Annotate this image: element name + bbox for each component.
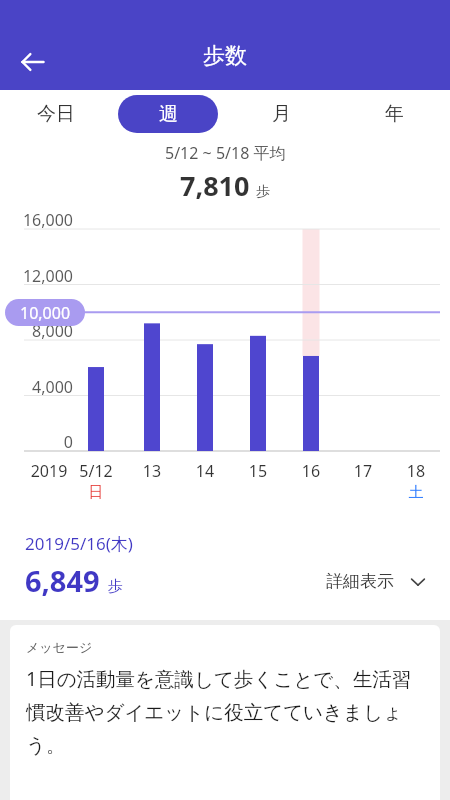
staticText: 歩 <box>256 183 270 201</box>
staticText: 4,000 <box>0 376 73 398</box>
staticText: 17 <box>338 460 388 482</box>
button[interactable]: Back <box>12 41 54 83</box>
button[interactable]: 今日 <box>6 95 106 133</box>
staticText: 2019 <box>24 460 74 482</box>
staticText: 5/12 ~ 5/18 平均 <box>165 142 286 164</box>
staticText: 7,810 <box>180 167 250 204</box>
staticText: 日 <box>71 483 121 502</box>
staticText: 13 <box>127 460 177 482</box>
staticText: 週 <box>159 102 178 126</box>
staticText: 詳細表示 <box>326 571 394 592</box>
staticText: 8,000 <box>0 320 73 342</box>
button[interactable]: 詳細表示 <box>316 563 436 600</box>
staticText: 2019/5/16(木) <box>25 532 133 555</box>
button[interactable]: 週 <box>118 95 218 133</box>
staticText: 16 <box>286 460 336 482</box>
staticText: 歩数 <box>203 42 247 70</box>
button[interactable]: メッセージ <box>10 625 440 800</box>
staticText: 12,000 <box>0 265 73 287</box>
button[interactable]: 月 <box>231 95 331 133</box>
staticText: 土 <box>391 483 441 502</box>
staticText: 月 <box>272 102 291 126</box>
staticText: 14 <box>180 460 230 482</box>
staticText: 18 <box>391 460 441 482</box>
staticText: 歩 <box>108 577 123 596</box>
staticText: 今日 <box>37 102 75 126</box>
staticText: 年 <box>385 102 404 126</box>
staticText: 16,000 <box>0 209 73 231</box>
staticText: 15 <box>233 460 283 482</box>
button[interactable]: 年 <box>344 95 444 133</box>
staticText: 6,849 <box>25 561 100 600</box>
staticText: 1日の活動量を意識して歩くことで、生活習慣改善やダイエットに役立てていきましょう… <box>26 665 428 757</box>
staticText: 10,000 <box>20 302 71 324</box>
staticText: 5/12 <box>71 460 121 482</box>
staticText: メッセージ <box>26 639 93 655</box>
staticText: 0 <box>0 431 73 453</box>
